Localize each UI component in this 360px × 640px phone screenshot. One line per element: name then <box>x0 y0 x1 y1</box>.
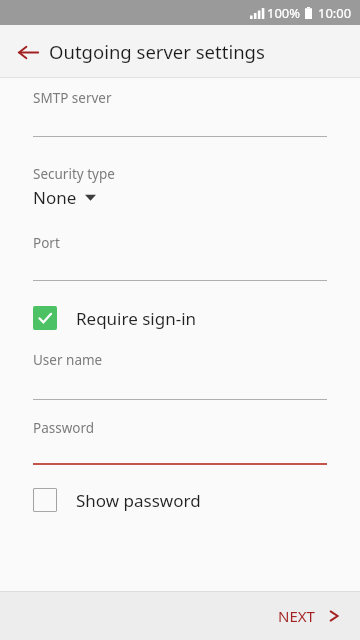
staticText: NEXT <box>278 606 315 626</box>
staticText: Require sign-in <box>76 307 197 330</box>
staticText: SMTP server <box>33 89 112 107</box>
button[interactable]: Show password <box>0 479 360 521</box>
staticText: User name <box>33 351 103 369</box>
button[interactable]: None <box>33 186 96 209</box>
button[interactable]: NEXT <box>258 592 360 640</box>
staticText: Security type <box>33 165 115 183</box>
staticText: None <box>33 186 77 209</box>
staticText: Show password <box>76 489 201 512</box>
staticText: Password <box>33 419 95 437</box>
staticText: 100% <box>267 4 301 22</box>
staticText: Outgoing server settings <box>49 39 265 64</box>
staticText: 10:00 <box>318 4 352 22</box>
button[interactable]: Require sign-in <box>0 298 360 338</box>
button[interactable]: Navigate up <box>4 28 52 76</box>
staticText: Port <box>33 234 60 252</box>
